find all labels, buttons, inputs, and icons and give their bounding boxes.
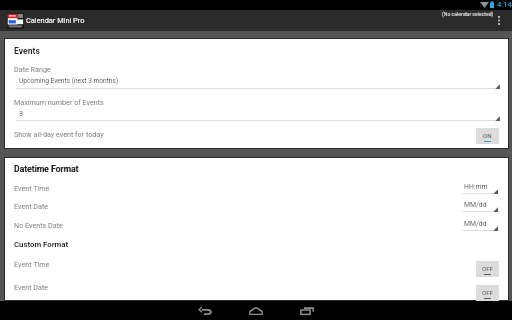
- staticText: Maximum number of Events: [14, 98, 104, 106]
- staticText: MM/dd: [464, 220, 487, 228]
- button[interactable]: Recent apps: [286, 301, 328, 320]
- button[interactable]: Show all-day event for today: [5, 123, 508, 147]
- staticText: Custom Format: [14, 240, 69, 249]
- button[interactable]: Back: [184, 301, 226, 320]
- staticText: MM/dd: [464, 201, 487, 209]
- staticText: Datetime Format: [14, 164, 79, 174]
- staticText: Event Date: [14, 202, 49, 210]
- staticText: Event Date: [14, 283, 49, 291]
- button[interactable]: More options: [493, 10, 507, 31]
- staticText: Event Time: [14, 260, 50, 268]
- staticText: Show all-day event for today: [14, 130, 104, 138]
- button[interactable]: Home: [235, 301, 277, 320]
- button[interactable]: Event Date: [5, 198, 508, 216]
- staticText: Date Range: [14, 65, 51, 73]
- staticText: ON: [483, 132, 492, 139]
- staticText: 3: [19, 110, 23, 118]
- staticText: Events: [14, 46, 40, 56]
- staticText: HH:mm: [464, 183, 488, 191]
- staticText: OFF: [482, 289, 494, 296]
- staticText: Event Time: [14, 184, 50, 192]
- staticText: Calendar Mini Pro: [26, 16, 85, 25]
- button[interactable]: Event Date: [5, 279, 508, 299]
- button[interactable]: Toggle off: [476, 285, 499, 301]
- button[interactable]: 3: [16, 109, 500, 121]
- button[interactable]: Toggle off: [476, 261, 499, 277]
- staticText: No Events Date: [14, 221, 63, 229]
- button[interactable]: Event Time: [5, 180, 508, 198]
- button[interactable]: Toggle on: [476, 128, 499, 144]
- button[interactable]: No Events Date: [5, 217, 508, 235]
- button[interactable]: Upcoming Events (next 3 months): [16, 77, 500, 89]
- staticText: (No calendar selected): [442, 11, 494, 17]
- staticText: 4:14: [497, 0, 512, 9]
- staticText: OFF: [482, 265, 494, 272]
- staticText: Upcoming Events (next 3 months): [19, 77, 119, 85]
- staticText: Datetime Format: [14, 164, 79, 174]
- button[interactable]: Event Time: [5, 256, 508, 276]
